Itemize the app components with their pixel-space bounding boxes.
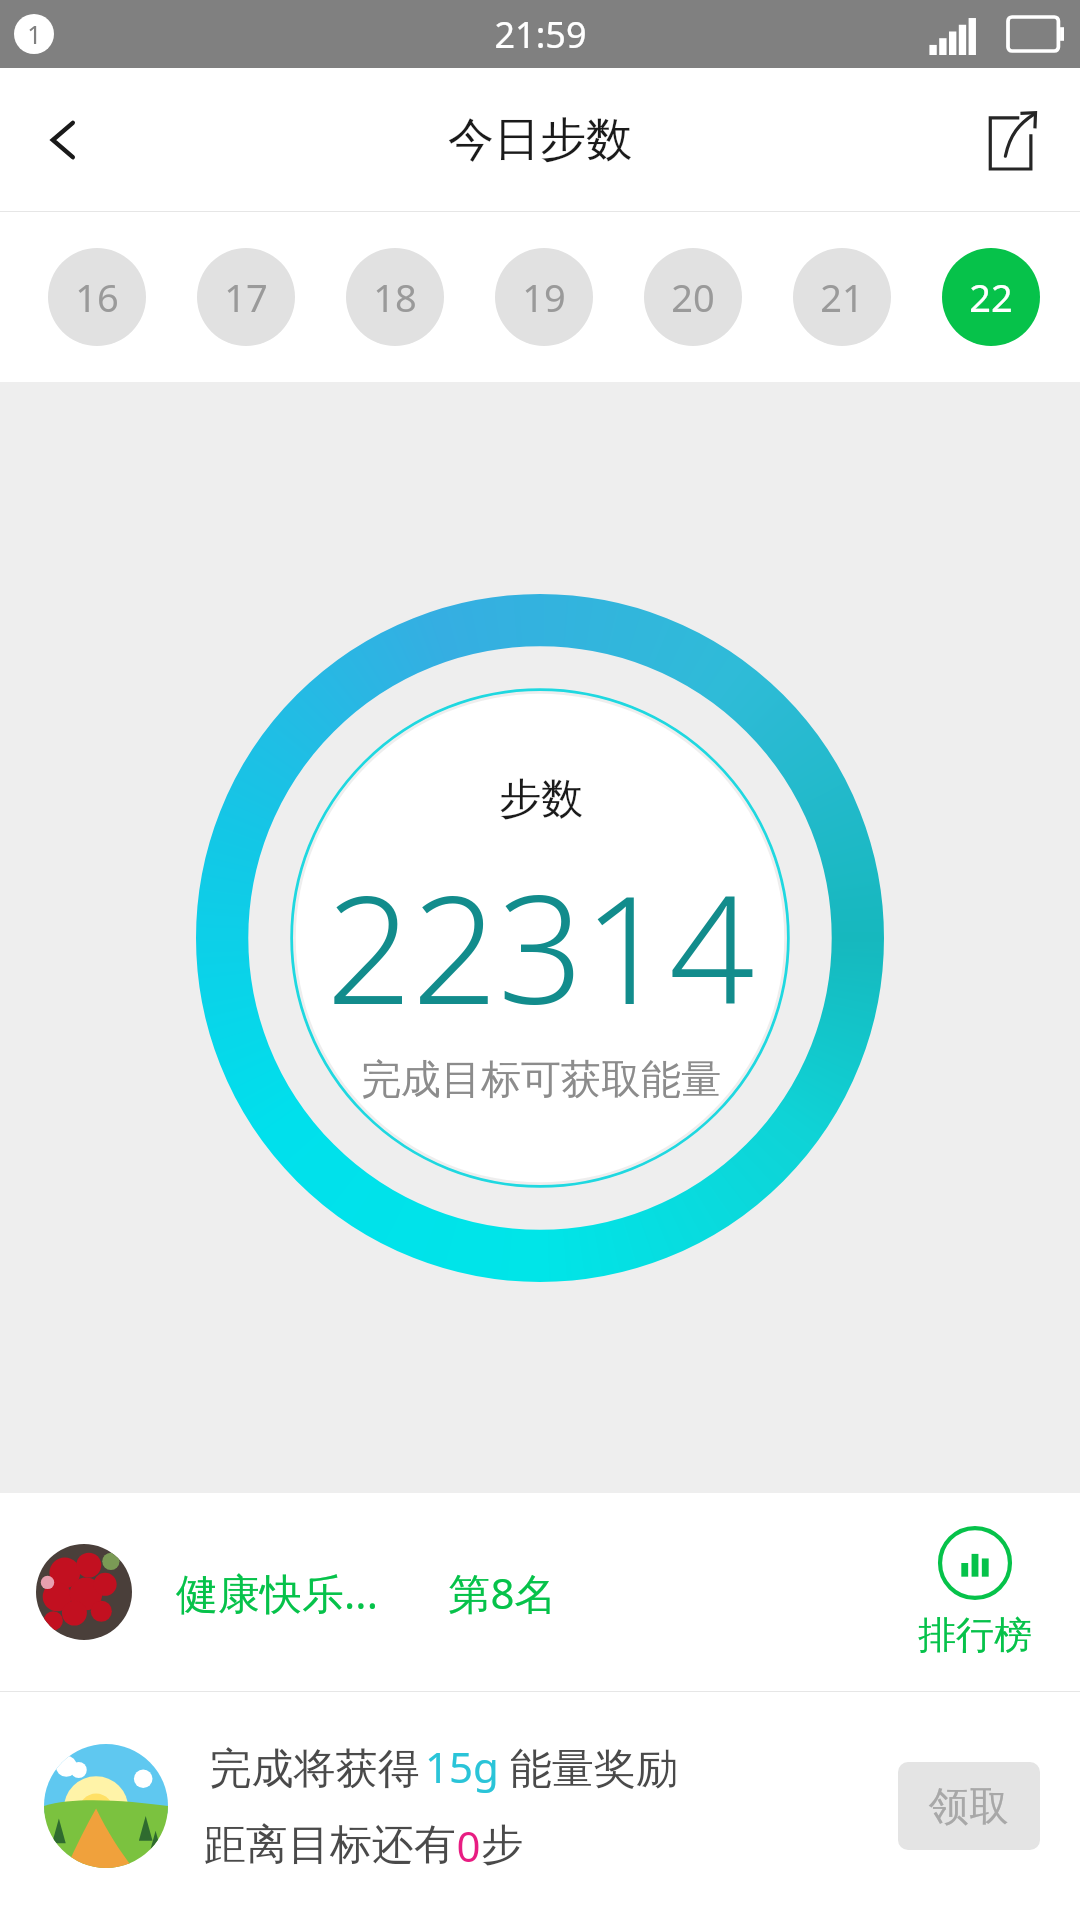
staticText: 17 [224,271,268,323]
staticText: 能量奖励 [499,1738,678,1795]
staticText: 18 [373,271,417,323]
staticText: 0 [456,1817,481,1874]
button[interactable]: 排行榜 [910,1525,1040,1659]
button[interactable]: Back [26,102,102,178]
staticText: 21:59 [494,10,587,59]
button[interactable]: 20 [644,248,742,346]
staticText: 22 [969,271,1013,323]
staticText: 1 [27,17,42,51]
staticText: 步数 [499,773,583,826]
button[interactable]: 领取 [898,1762,1040,1850]
staticText: 排行榜 [918,1611,1032,1659]
staticText: 距离目标还有 [204,1819,456,1872]
button[interactable]: 健康快乐... [0,1493,1080,1691]
button[interactable]: 16 [48,248,146,346]
button[interactable]: 22 [942,248,1040,346]
staticText: 21 [820,271,864,323]
button[interactable]: 19 [495,248,593,346]
staticText: 15g [425,1738,499,1795]
button[interactable]: Share [970,100,1050,180]
staticText: 健康快乐... [176,1564,378,1621]
staticText: 16 [75,271,119,323]
button[interactable]: 21 [793,248,891,346]
staticText: 19 [522,271,566,323]
staticText: 完成目标可获取能量 [361,1054,721,1104]
staticText: 步 [481,1819,523,1872]
staticText: 完成将获得 [204,1738,425,1795]
button[interactable]: 17 [197,248,295,346]
staticText: 第8名 [448,1564,557,1621]
staticText: 20 [671,271,715,323]
staticText: 领取 [929,1781,1009,1831]
button[interactable]: 18 [346,248,444,346]
staticText: 今日步数 [448,111,632,169]
staticText: 22314 [326,844,755,1048]
